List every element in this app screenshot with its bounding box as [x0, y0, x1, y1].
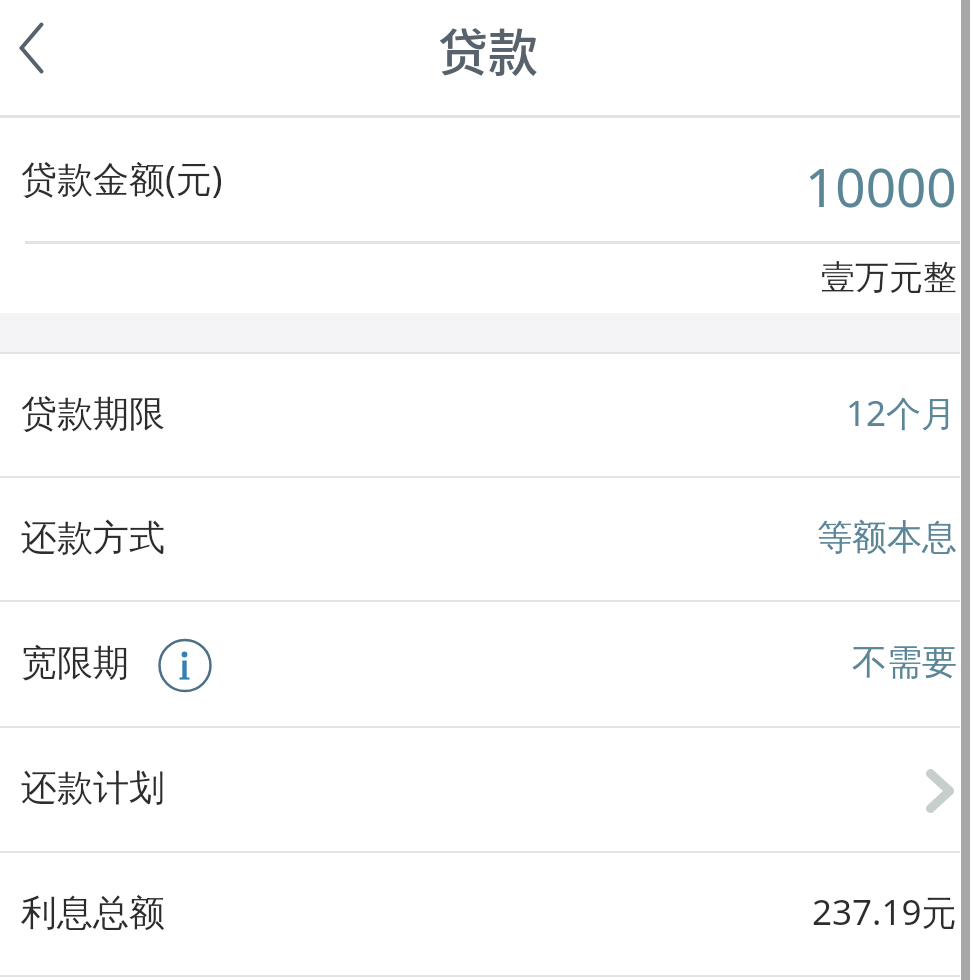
button[interactable]: 贷款金额(元)	[0, 118, 960, 241]
staticText: 还款方式	[21, 515, 165, 560]
staticText: 237.19元	[812, 888, 957, 936]
staticText: 等额本息	[817, 515, 957, 559]
staticText: 利息总额	[21, 890, 165, 935]
staticText: 贷款期限	[21, 391, 165, 436]
button[interactable]: 宽限期	[0, 602, 960, 726]
button[interactable]: 还款方式	[0, 478, 960, 600]
staticText: 贷款金额(元)	[21, 154, 223, 203]
staticText: 宽限期	[21, 640, 129, 685]
staticText: 贷款	[438, 13, 538, 85]
button[interactable]: Grace period info	[157, 636, 213, 692]
button[interactable]: 贷款期限	[0, 354, 960, 476]
button[interactable]: 还款计划	[0, 728, 960, 851]
staticText: 不需要	[852, 640, 957, 684]
staticText: 还款计划	[21, 765, 165, 810]
staticText: 10000	[805, 150, 957, 222]
button[interactable]: Back	[0, 8, 66, 108]
button[interactable]: 利息总额	[0, 853, 960, 975]
staticText: 12个月	[846, 389, 957, 437]
staticText: 壹万元整	[821, 256, 957, 299]
